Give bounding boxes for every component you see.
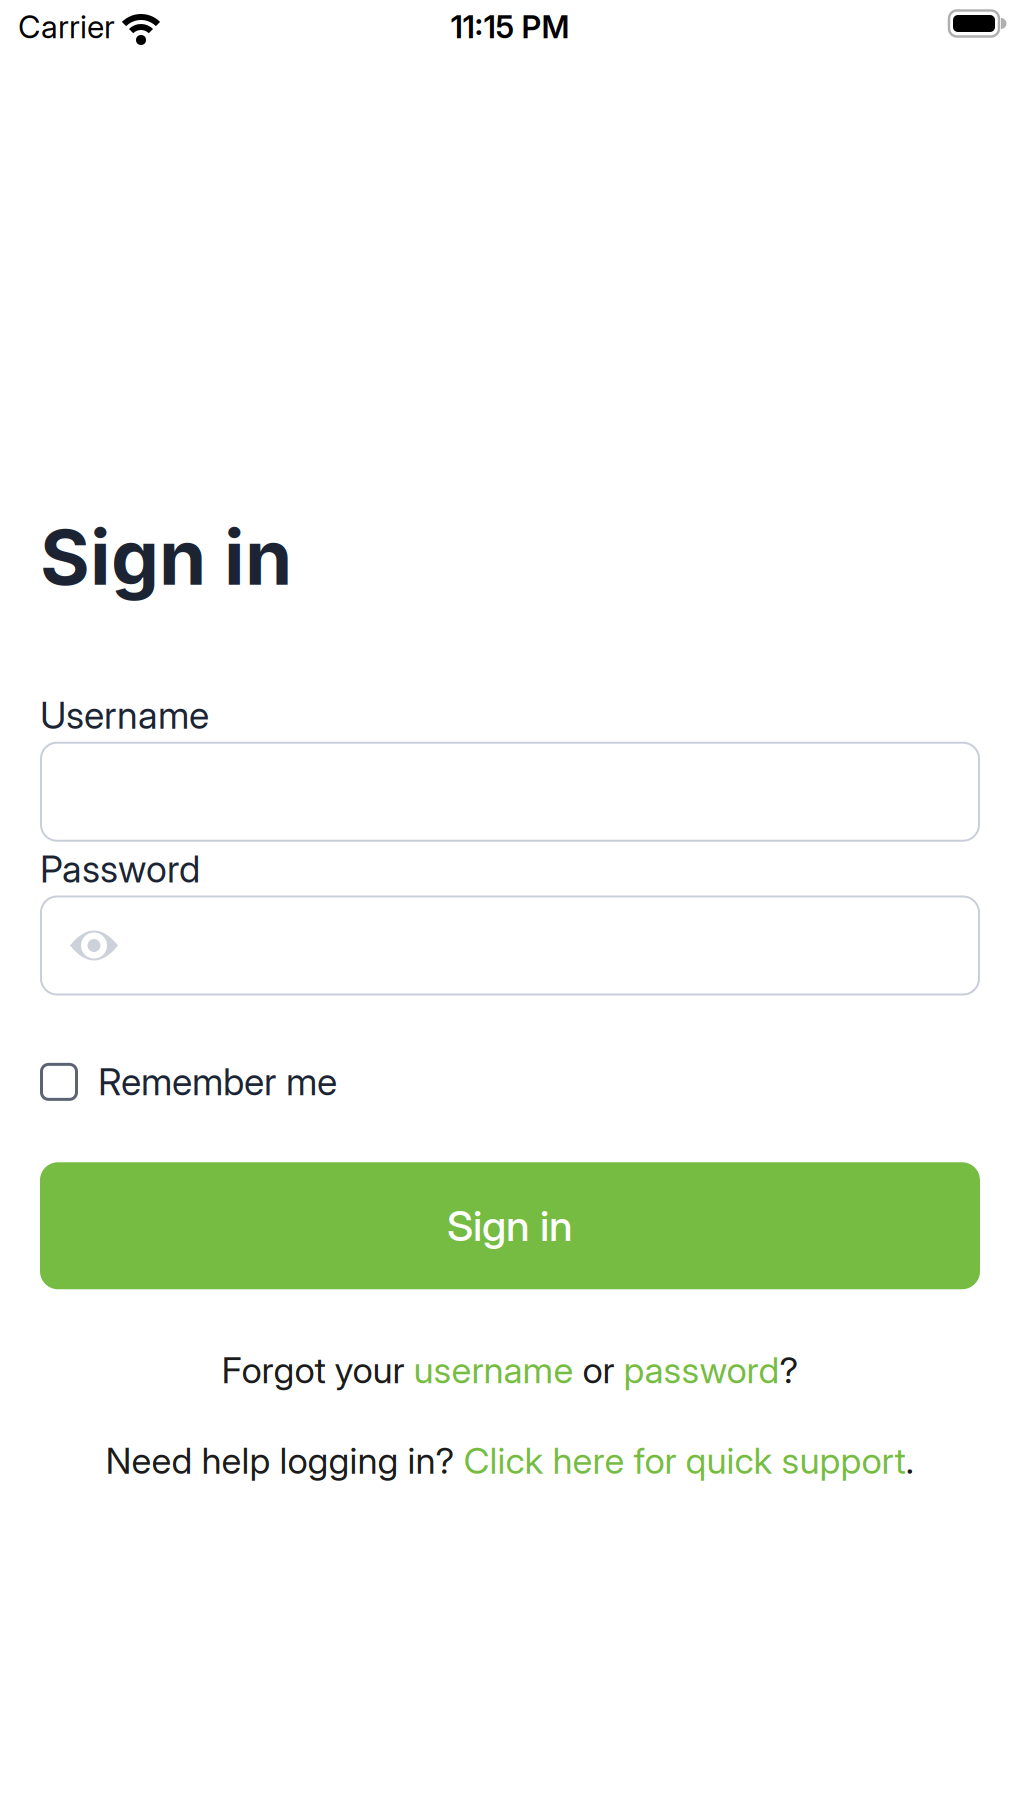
button[interactable]: Click here for quick support <box>463 1439 905 1482</box>
staticText: password <box>623 1348 779 1392</box>
staticText: or <box>573 1348 623 1392</box>
button[interactable]: Sign in <box>40 1162 980 1289</box>
button[interactable]: username <box>413 1348 573 1392</box>
staticText: Username <box>40 693 209 738</box>
button[interactable]: Show password <box>70 928 118 962</box>
staticText: ? <box>779 1348 798 1392</box>
staticText: Remember me <box>98 1059 337 1104</box>
staticText: Need help logging in? <box>105 1439 463 1482</box>
staticText: username <box>413 1348 573 1392</box>
button[interactable]: Username <box>40 742 980 842</box>
staticText: Carrier <box>18 8 115 46</box>
button[interactable]: Password <box>40 895 980 995</box>
button[interactable]: password <box>623 1348 779 1392</box>
staticText: . <box>905 1439 914 1482</box>
staticText: Sign in <box>447 1200 573 1251</box>
staticText: Password <box>40 847 200 891</box>
staticText: Sign in <box>40 511 292 603</box>
staticText: 11:15 PM <box>450 8 569 46</box>
button[interactable]: Remember me <box>0 1059 337 1104</box>
staticText: Forgot your <box>221 1348 413 1392</box>
staticText: Click here for quick support <box>463 1439 905 1482</box>
